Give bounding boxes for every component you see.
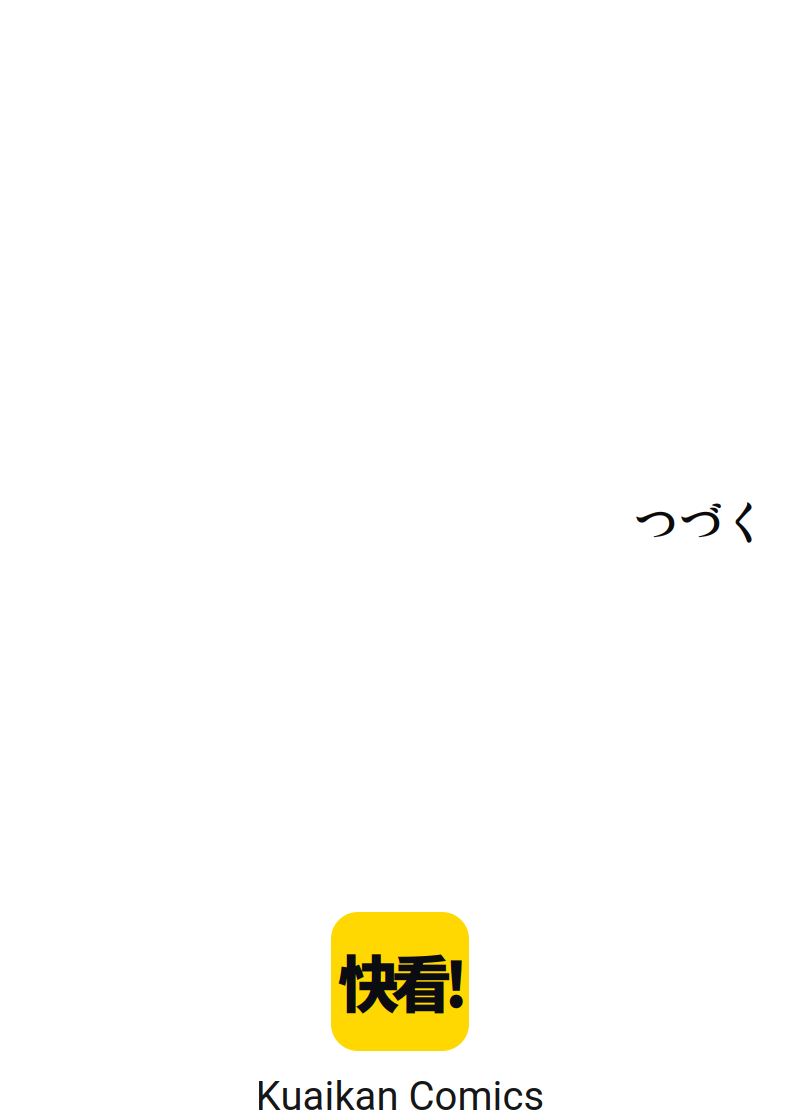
staticText: 看 (391, 936, 452, 1025)
button[interactable]: Kuaikan Comics (0, 912, 800, 1110)
staticText: Kuaikan Comics (255, 1073, 544, 1110)
staticText: つづく (633, 487, 768, 553)
staticText: ! (444, 936, 468, 1025)
staticText: 快 (338, 936, 399, 1025)
